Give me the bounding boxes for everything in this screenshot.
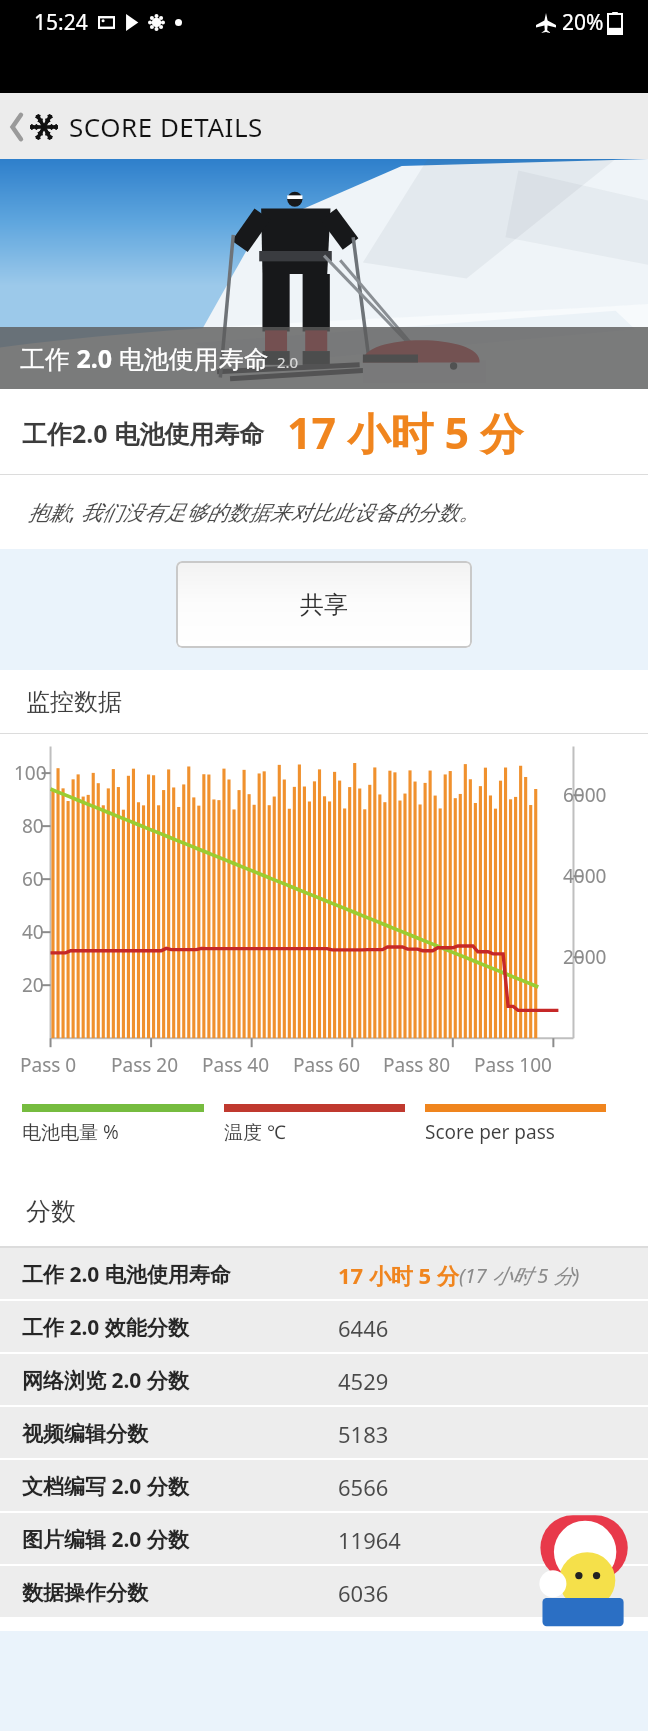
staticText: 5183 xyxy=(338,1419,389,1449)
staticText: 工作 2.0 电池使用寿命 xyxy=(22,1260,231,1289)
staticText: 温度 ℃ xyxy=(224,1119,286,1145)
button[interactable]: 网络浏览 2.0 分数 xyxy=(0,1354,648,1407)
staticText: 40 xyxy=(22,919,44,945)
staticText: 2000 xyxy=(563,944,607,970)
staticText: 图片编辑 2.0 分数 xyxy=(22,1525,189,1554)
staticText: Pass 80 xyxy=(383,1052,451,1078)
staticText: 文档编写 2.0 分数 xyxy=(22,1472,189,1501)
staticText: 4000 xyxy=(563,863,607,889)
staticText: 网络浏览 2.0 分数 xyxy=(22,1366,189,1395)
staticText: SCORE DETAILS xyxy=(69,109,263,144)
staticText: 电池电量 % xyxy=(22,1119,119,1145)
staticText: 17 小时 5 分 xyxy=(338,1260,459,1290)
staticText: 监控数据 xyxy=(26,687,122,717)
staticText: 20% xyxy=(562,8,604,37)
button[interactable]: 共享 xyxy=(176,561,472,648)
button[interactable]: Back to score details xyxy=(0,93,648,159)
staticText: 80 xyxy=(22,813,44,839)
button[interactable]: 工作 2.0 电池使用寿命 xyxy=(0,1248,648,1301)
staticText: 60 xyxy=(22,866,44,892)
staticText: Score per pass xyxy=(425,1119,555,1145)
staticText: 抱歉, 我们没有足够的数据来对比此设备的分数。 xyxy=(28,498,480,527)
staticText: Pass 40 xyxy=(202,1052,270,1078)
staticText: 11964 xyxy=(338,1525,401,1555)
staticText: 共享 xyxy=(300,590,348,620)
staticText: Pass 0 xyxy=(20,1052,77,1078)
button[interactable]: 工作 2.0 效能分数 xyxy=(0,1301,648,1354)
staticText: Pass 100 xyxy=(474,1052,552,1078)
staticText: 工作 2.0 电池使用寿命 xyxy=(20,341,269,375)
staticText: 15:24 xyxy=(34,8,88,37)
staticText: 视频编辑分数 xyxy=(22,1421,148,1447)
staticText: Pass 20 xyxy=(111,1052,179,1078)
staticText: 数据操作分数 xyxy=(22,1580,148,1606)
button[interactable]: 文档编写 2.0 分数 xyxy=(0,1460,648,1513)
staticText: 工作 2.0 效能分数 xyxy=(22,1313,189,1342)
staticText: 20 xyxy=(22,972,44,998)
staticText: 4529 xyxy=(338,1366,389,1396)
staticText: 6036 xyxy=(338,1578,389,1608)
staticText: Pass 60 xyxy=(293,1052,361,1078)
button[interactable]: 图片编辑 2.0 分数 xyxy=(0,1513,648,1566)
staticText: 工作2.0 电池使用寿命 xyxy=(22,416,265,450)
staticText: 6566 xyxy=(338,1472,389,1502)
staticText: 100 xyxy=(14,760,47,786)
button[interactable]: 数据操作分数 xyxy=(0,1566,648,1619)
staticText: 2.0 xyxy=(277,352,299,372)
staticText: (17 小时 5 分) xyxy=(459,1262,580,1289)
staticText: 17 小时 5 分 xyxy=(287,403,524,462)
staticText: 6000 xyxy=(563,782,607,808)
staticText: 分数 xyxy=(26,1196,76,1227)
button[interactable]: 视频编辑分数 xyxy=(0,1407,648,1460)
staticText: 6446 xyxy=(338,1313,389,1343)
